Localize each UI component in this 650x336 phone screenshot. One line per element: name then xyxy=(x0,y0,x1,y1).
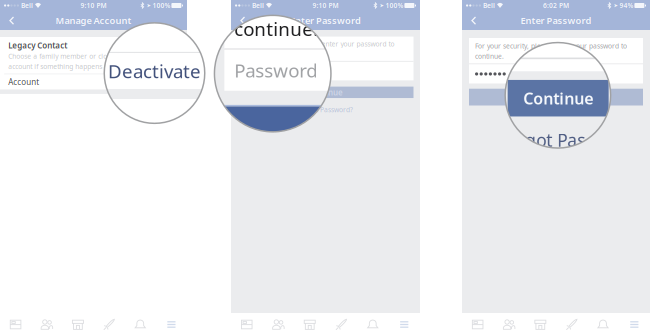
staticText: 6:02 PM xyxy=(543,1,569,10)
staticText: Forgot Password? xyxy=(298,105,353,114)
staticText: Password xyxy=(242,66,278,76)
staticText: For your security, please enter your pas… xyxy=(242,39,394,48)
staticText: ➤ xyxy=(144,2,152,9)
staticText: Continue xyxy=(523,88,593,109)
staticText: Bell xyxy=(481,1,497,10)
staticText: Bell xyxy=(19,1,35,10)
staticText: Legacy Contact xyxy=(8,40,67,51)
button[interactable]: Continue xyxy=(462,89,650,106)
button[interactable]: Forgot Password? xyxy=(231,106,420,114)
button[interactable]: News Feed xyxy=(462,313,493,336)
button[interactable]: Friend Requests xyxy=(493,313,525,336)
button[interactable]: Friend Requests xyxy=(262,313,294,336)
staticText: Enter Password xyxy=(520,14,591,27)
button[interactable]: Notifications xyxy=(125,313,156,336)
staticText: Choose a family member or close friend t… xyxy=(8,52,181,61)
staticText: 100% xyxy=(385,1,403,10)
staticText: 9:10 PM xyxy=(80,1,106,10)
button[interactable]: News Feed xyxy=(0,313,31,336)
button[interactable]: Watch xyxy=(93,313,125,336)
button[interactable]: Watch xyxy=(325,313,357,336)
staticText: 100% xyxy=(152,1,170,10)
button[interactable]: Marketplace xyxy=(294,313,325,336)
button[interactable]: Marketplace xyxy=(62,313,93,336)
staticText: ➤ xyxy=(611,2,619,9)
staticText: For your security, please enter your pas… xyxy=(475,41,627,50)
button[interactable]: Account xyxy=(4,74,183,89)
staticText: Manage Account xyxy=(55,14,131,27)
staticText: continue. xyxy=(234,16,318,41)
button[interactable]: Back xyxy=(4,11,20,30)
button[interactable]: Watch xyxy=(556,313,587,336)
button[interactable]: Forgot Password? xyxy=(462,115,650,124)
staticText: Password xyxy=(234,58,317,83)
button[interactable]: Notifications xyxy=(587,313,619,336)
staticText: Forgot Password? xyxy=(523,114,589,124)
staticText: Bell xyxy=(250,1,266,10)
button[interactable]: Menu xyxy=(619,313,650,336)
staticText: account if something happens to you. xyxy=(8,62,125,71)
button[interactable]: Continue xyxy=(231,87,420,98)
staticText: Enter Password xyxy=(290,14,361,27)
button[interactable]: Back xyxy=(466,11,482,30)
staticText: continue. xyxy=(475,52,504,61)
button[interactable]: Menu xyxy=(388,313,420,336)
button[interactable]: Friend Requests xyxy=(31,313,62,336)
staticText: Forgot Password? xyxy=(499,129,605,152)
button[interactable]: Notifications xyxy=(357,313,388,336)
staticText: 94% xyxy=(619,1,633,10)
button[interactable]: Back xyxy=(235,11,251,30)
staticText: Account xyxy=(8,77,39,87)
button[interactable]: Menu xyxy=(156,313,187,336)
staticText: Continue xyxy=(308,87,343,98)
staticText: ➤ xyxy=(377,2,385,9)
button[interactable]: Marketplace xyxy=(525,313,556,336)
staticText: Continue xyxy=(535,91,577,103)
staticText: 9:10 PM xyxy=(312,1,338,10)
button[interactable]: News Feed xyxy=(231,313,262,336)
staticText: Deactivate xyxy=(108,59,201,83)
